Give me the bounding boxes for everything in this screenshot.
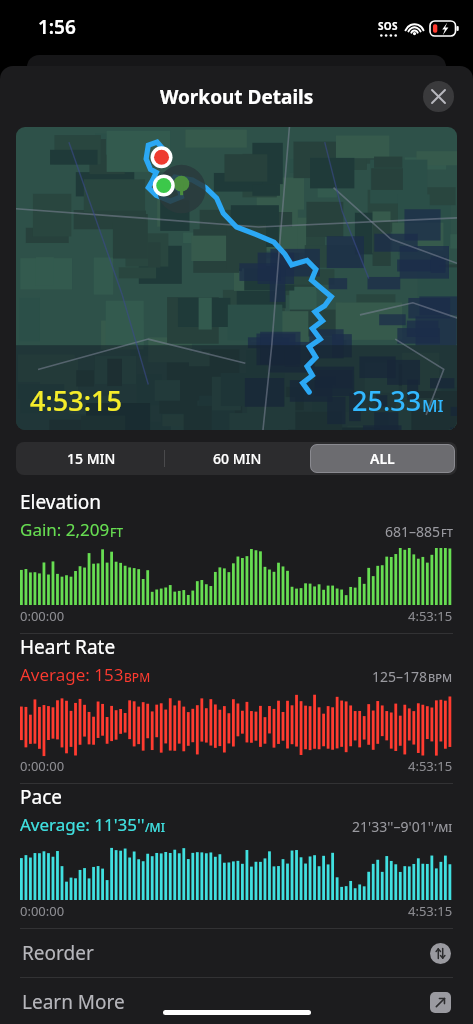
staticText: Heart Rate: [20, 634, 116, 660]
staticText: 681–885: [385, 522, 441, 541]
button[interactable]: ALL: [310, 444, 455, 473]
staticText: Workout Details: [160, 84, 314, 110]
staticText: ALL: [370, 449, 395, 468]
staticText: Reorder: [22, 940, 94, 966]
staticText: FT: [110, 524, 124, 540]
staticText: Learn More: [22, 989, 125, 1015]
staticText: BPM: [428, 670, 453, 685]
staticText: Average: 153: [20, 663, 124, 686]
staticText: 21'33''–9'01'': [352, 817, 434, 836]
staticText: 60 MIN: [213, 449, 262, 468]
staticText: 125–178: [372, 667, 428, 686]
staticText: 15 MIN: [67, 449, 116, 468]
button[interactable]: Learn More: [0, 978, 473, 1024]
staticText: Gain: 2,209: [20, 518, 110, 541]
staticText: 25.33: [352, 382, 422, 419]
staticText: 4:53:15: [408, 607, 453, 625]
staticText: 4:53:15: [408, 902, 453, 920]
staticText: Pace: [20, 784, 62, 810]
button[interactable]: Route map: [16, 127, 457, 430]
staticText: /MI: [434, 820, 453, 835]
button[interactable]: 15 MIN: [18, 444, 164, 473]
staticText: SOS: [378, 19, 398, 33]
staticText: 0:00:00: [20, 757, 65, 775]
staticText: 4:53:15: [30, 382, 122, 419]
staticText: Average: 11'35'': [20, 813, 145, 836]
button[interactable]: 60 MIN: [165, 444, 310, 473]
staticText: /MI: [145, 819, 165, 835]
button[interactable]: Reorder: [0, 929, 473, 977]
staticText: 0:00:00: [20, 902, 65, 920]
staticText: Elevation: [20, 489, 102, 515]
staticText: 0:00:00: [20, 607, 65, 625]
staticText: 4:53:15: [408, 757, 453, 775]
button[interactable]: Close: [423, 81, 454, 112]
staticText: 1:56: [38, 14, 76, 40]
staticText: MI: [422, 394, 444, 417]
staticText: BPM: [124, 669, 151, 685]
staticText: FT: [441, 525, 453, 540]
